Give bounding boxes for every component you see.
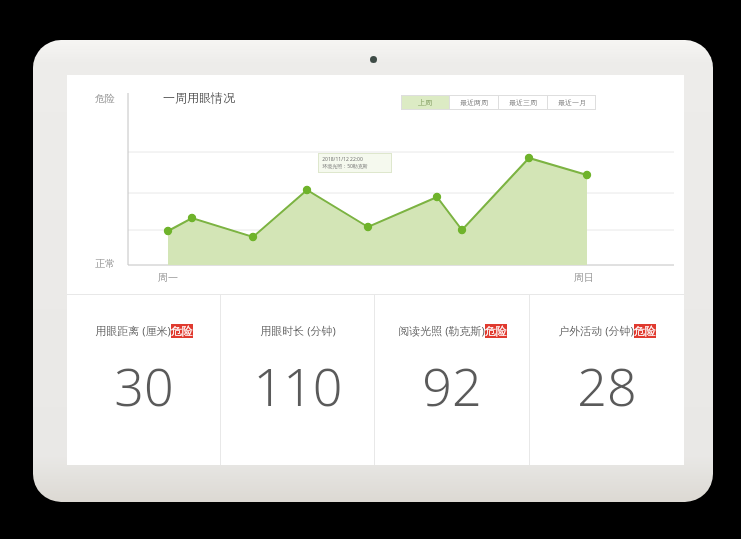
staticText: 92 — [422, 350, 482, 421]
button[interactable]: 上周 — [401, 95, 449, 110]
button[interactable]: 阅读光照 (勒克斯) — [375, 295, 529, 465]
staticText: 最近一月 — [558, 98, 586, 107]
staticText: 危险 — [95, 92, 115, 105]
staticText: 周一 — [158, 271, 178, 284]
staticText: 正常 — [95, 257, 115, 270]
button[interactable]: 最近一月 — [548, 95, 596, 110]
staticText: 上周 — [418, 98, 432, 107]
staticText: 最近两周 — [460, 98, 488, 107]
staticText: 用眼距离 (厘米) — [95, 323, 171, 338]
staticText: 阅读光照 (勒克斯) — [398, 323, 485, 338]
button[interactable]: 户外活动 (分钟) — [530, 295, 684, 465]
staticText: 110 — [253, 350, 343, 421]
staticText: 2018/11/12 22:00 — [322, 156, 363, 163]
staticText: 一周用眼情况 — [163, 90, 235, 105]
staticText: 30 — [114, 350, 174, 421]
staticText: 危险 — [485, 324, 507, 338]
staticText: 危险 — [171, 324, 193, 338]
staticText: 最近三周 — [509, 98, 537, 107]
staticText: 28 — [577, 350, 637, 421]
button[interactable]: 最近两周 — [450, 95, 498, 110]
button[interactable]: 用眼时长 (分钟) — [221, 295, 374, 465]
staticText: 户外活动 (分钟) — [558, 323, 634, 338]
button[interactable]: 用眼距离 (厘米) — [67, 295, 220, 465]
button[interactable]: 最近三周 — [499, 95, 547, 110]
staticText: 周日 — [574, 271, 594, 284]
staticText: 用眼时长 (分钟) — [260, 323, 336, 338]
staticText: 环境光照：50勒克斯 — [322, 163, 368, 170]
staticText: 危险 — [634, 324, 656, 338]
